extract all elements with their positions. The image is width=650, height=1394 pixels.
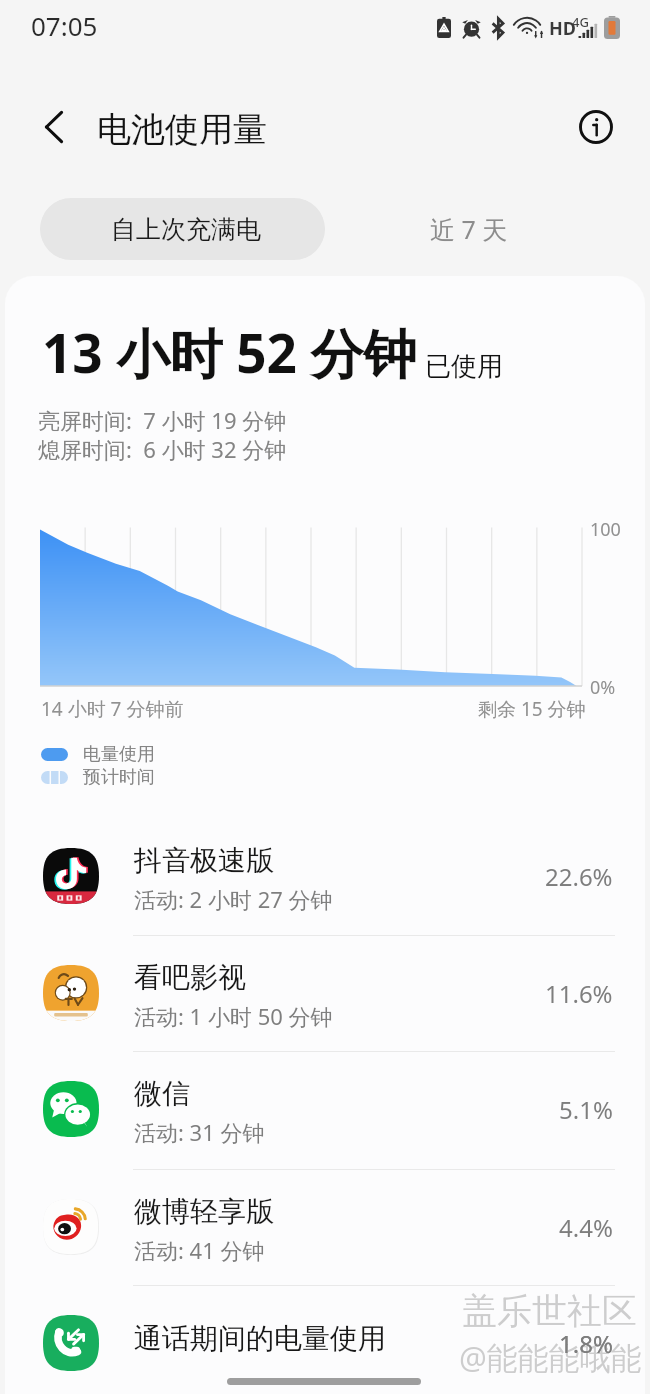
staticText: 0%: [590, 675, 616, 700]
staticText: 22.6%: [545, 860, 613, 893]
staticText: @能能能哦能: [460, 1337, 643, 1379]
staticText: 07:05: [31, 8, 98, 43]
staticText: 已使用: [425, 350, 503, 383]
staticText: 活动: 2 小时 27 分钟: [134, 884, 333, 914]
staticText: 微博轻享版: [134, 1194, 274, 1229]
staticText: 自上次充满电: [111, 214, 261, 245]
staticText: 1.8%: [559, 1327, 613, 1360]
button[interactable]: 自上次充满电: [40, 198, 325, 260]
staticText: 微信: [134, 1076, 190, 1111]
button[interactable]: 通话期间的电量使用: [5, 1285, 645, 1394]
button[interactable]: Back: [24, 97, 84, 157]
staticText: 电量使用: [83, 743, 155, 766]
button[interactable]: Information: [566, 97, 626, 157]
staticText: 亮屏时间: 7 小时 19 分钟: [38, 405, 287, 435]
button[interactable]: 近 7 天: [390, 198, 548, 260]
staticText: HD: [549, 16, 576, 41]
staticText: 5.1%: [559, 1093, 613, 1126]
staticText: 看吧影视: [134, 960, 246, 995]
staticText: 活动: 31 分钟: [134, 1117, 265, 1147]
staticText: 4G: [572, 13, 589, 31]
button[interactable]: 看吧影视: [5, 935, 645, 1052]
staticText: 抖音极速版: [134, 843, 274, 878]
staticText: 电池使用量: [97, 108, 267, 151]
button[interactable]: 抖音极速版: [5, 818, 645, 935]
staticText: 预计时间: [83, 766, 155, 789]
button[interactable]: 微信: [5, 1051, 645, 1168]
staticText: 活动: 41 分钟: [134, 1235, 265, 1265]
staticText: 100: [590, 517, 621, 542]
staticText: 盖乐世社区: [462, 1289, 637, 1333]
staticText: 13 小时 52 分钟: [42, 316, 417, 388]
button[interactable]: 微博轻享版: [5, 1169, 645, 1286]
staticText: 通话期间的电量使用: [134, 1321, 386, 1356]
staticText: 剩余 15 分钟: [478, 696, 586, 722]
staticText: 近 7 天: [430, 212, 508, 246]
staticText: 4.4%: [559, 1211, 613, 1244]
staticText: 活动: 1 小时 50 分钟: [134, 1001, 333, 1031]
staticText: @能能能哦能: [459, 1336, 642, 1378]
staticText: 熄屏时间: 6 小时 32 分钟: [38, 434, 287, 464]
staticText: 14 小时 7 分钟前: [41, 696, 184, 722]
staticText: 1.8%: [559, 1327, 613, 1360]
staticText: 盖乐世社区: [463, 1290, 638, 1334]
staticText: 11.6%: [545, 977, 613, 1010]
